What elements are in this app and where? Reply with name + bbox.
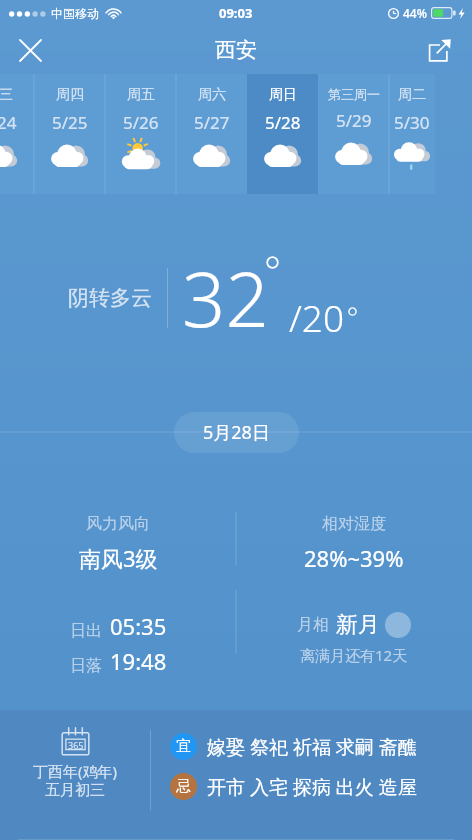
- staticText: 28%~39%: [304, 543, 404, 573]
- button[interactable]: 周三: [0, 74, 34, 194]
- staticText: 周日: [269, 86, 297, 104]
- staticText: 中国移动: [51, 6, 99, 21]
- staticText: 09:03: [219, 4, 253, 22]
- staticText: 5/27: [194, 111, 230, 134]
- button[interactable]: 周六: [176, 74, 247, 194]
- staticText: 5月28日: [203, 420, 270, 445]
- staticText: 忌: [176, 777, 191, 796]
- staticText: 5/29: [336, 109, 372, 132]
- button[interactable]: 周日: [247, 74, 318, 194]
- staticText: 周四: [56, 86, 84, 104]
- staticText: 嫁娶 祭祀 祈福 求嗣 斋醮: [207, 734, 417, 760]
- staticText: 五月初三: [45, 781, 105, 800]
- staticText: 开市 入宅 探病 出火 造屋: [207, 774, 417, 800]
- staticText: 32: [182, 246, 269, 350]
- staticText: 周六: [198, 86, 226, 104]
- staticText: 5/30: [394, 111, 430, 134]
- button[interactable]: 周五: [105, 74, 176, 194]
- staticText: 新月: [336, 611, 380, 639]
- staticText: 阴转多云: [68, 285, 152, 311]
- button[interactable]: Close: [6, 26, 54, 74]
- staticText: 月相: [297, 615, 329, 635]
- staticText: 365: [68, 739, 84, 751]
- staticText: 19:48: [110, 646, 167, 676]
- staticText: 南风3级: [79, 543, 158, 573]
- staticText: 5/26: [123, 111, 159, 134]
- staticText: 周五: [127, 86, 155, 104]
- button[interactable]: 365: [0, 710, 472, 840]
- staticText: 西安: [215, 37, 257, 63]
- button[interactable]: 第三周一: [318, 74, 389, 194]
- staticText: 日出: [70, 621, 102, 641]
- staticText: 日落: [70, 656, 102, 676]
- staticText: 风力风向: [86, 514, 150, 534]
- staticText: 宜: [176, 737, 191, 756]
- staticText: 周三: [0, 86, 13, 104]
- staticText: 5/24: [0, 111, 17, 134]
- button[interactable]: Share: [416, 27, 462, 73]
- staticText: 离满月还有12天: [300, 645, 408, 665]
- staticText: 丁酉年(鸡年): [33, 761, 118, 781]
- button[interactable]: 周二: [389, 74, 435, 194]
- staticText: 5/28: [265, 111, 301, 134]
- staticText: /20: [289, 292, 345, 342]
- staticText: 05:35: [110, 611, 167, 641]
- staticText: 第三周一: [328, 86, 380, 102]
- staticText: 周二: [398, 86, 426, 104]
- button[interactable]: 周四: [34, 74, 105, 194]
- staticText: 5/25: [52, 111, 88, 134]
- staticText: 44%: [403, 5, 427, 21]
- button[interactable]: 5月28日: [174, 412, 299, 453]
- staticText: 相对湿度: [322, 514, 386, 534]
